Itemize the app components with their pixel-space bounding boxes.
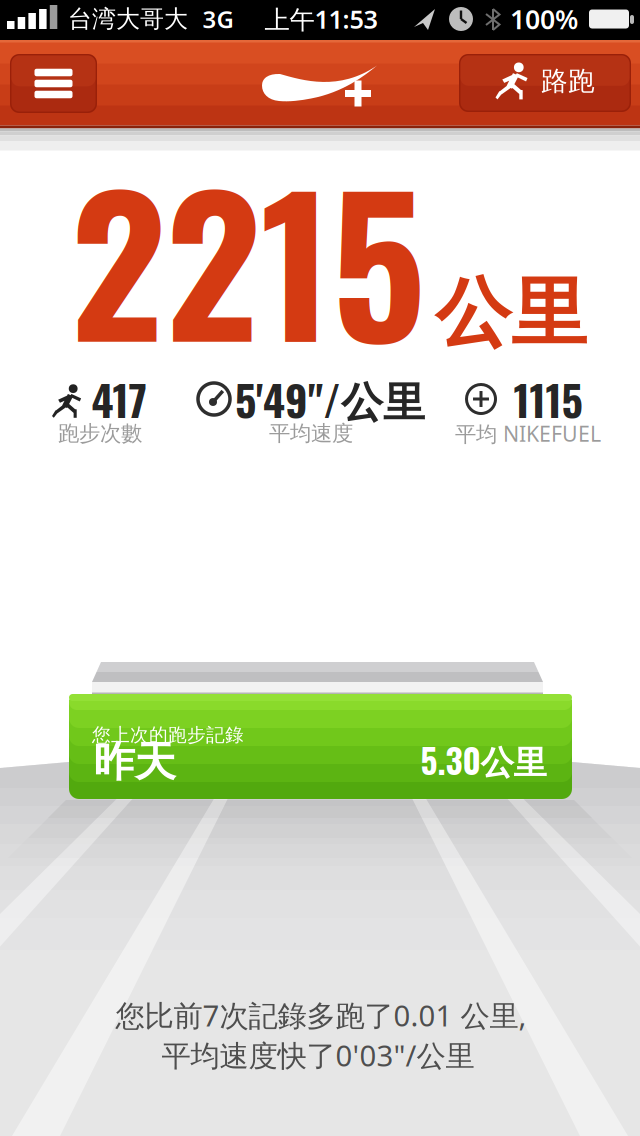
button[interactable]	[10, 54, 97, 113]
staticText: 5'49"/公里	[235, 368, 425, 430]
staticText: 台湾大哥大	[68, 4, 188, 34]
staticText: 417	[91, 368, 146, 430]
staticText: 1115	[513, 368, 582, 430]
staticText: 您上次的跑步記錄	[92, 723, 244, 746]
button[interactable]: 您上次的跑步記錄	[0, 660, 640, 805]
staticText: 平均 NIKEFUEL	[455, 419, 601, 448]
staticText: 上午11:53	[264, 2, 377, 36]
staticText: 平均速度	[269, 420, 353, 447]
staticText: 路跑	[541, 65, 595, 97]
staticText: 2215	[70, 121, 425, 395]
staticText: 100%	[510, 1, 578, 37]
staticText: 3G	[202, 3, 233, 35]
staticText: 昨天	[93, 737, 175, 787]
button[interactable]: 路跑	[459, 54, 631, 112]
staticText: 您比前7次記錄多跑了0.01 公里,	[115, 995, 526, 1034]
staticText: 跑步次數	[58, 420, 142, 447]
staticText: 公里	[435, 267, 587, 360]
staticText: 5.30公里	[420, 735, 546, 785]
staticText: 平均速度快了0'03"/公里	[161, 1035, 474, 1074]
